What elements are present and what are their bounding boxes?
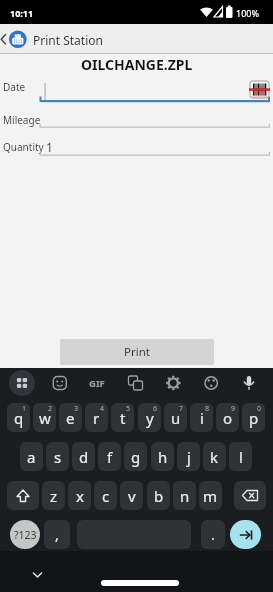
button[interactable]: b	[147, 481, 170, 510]
button[interactable]: n	[173, 481, 196, 510]
button[interactable]: o	[216, 403, 239, 432]
button[interactable]	[198, 370, 224, 396]
button[interactable]: m	[199, 481, 222, 510]
button[interactable]: Print Station	[0, 24, 273, 54]
staticText: j	[187, 447, 191, 467]
button[interactable]	[123, 370, 149, 396]
staticText: u	[171, 408, 181, 428]
staticText: y	[146, 408, 154, 428]
button[interactable]: c	[94, 481, 117, 510]
staticText: s	[54, 447, 62, 467]
button[interactable]: d	[72, 442, 95, 471]
staticText: 100%	[236, 7, 259, 19]
staticText: 7	[179, 404, 184, 414]
staticText: l	[239, 447, 243, 467]
button[interactable]: ,	[44, 520, 70, 549]
staticText: p	[249, 408, 259, 428]
staticText: a	[27, 447, 36, 467]
staticText: 6	[153, 404, 158, 414]
staticText: 3	[74, 404, 79, 414]
staticText: z	[50, 486, 58, 506]
staticText: ?123	[14, 528, 37, 542]
button[interactable]: p	[242, 403, 265, 432]
staticText: x	[76, 486, 84, 506]
button[interactable]: r	[85, 403, 108, 432]
staticText: r	[93, 408, 100, 428]
button[interactable]: .	[201, 520, 225, 549]
button[interactable]: a	[20, 442, 43, 471]
staticText: e	[66, 408, 75, 428]
staticText: n	[180, 486, 190, 506]
staticText: Date	[3, 80, 26, 94]
staticText: 8	[205, 404, 210, 414]
staticText: 10:11	[10, 7, 34, 19]
button[interactable]: g	[124, 442, 147, 471]
staticText: q	[14, 408, 24, 428]
button[interactable]	[85, 370, 111, 396]
staticText: Print	[124, 344, 150, 360]
staticText: 1	[46, 139, 53, 155]
staticText: w	[39, 408, 51, 428]
button[interactable]: q	[7, 403, 30, 432]
staticText: k	[210, 447, 219, 467]
staticText: 9	[231, 404, 236, 414]
button[interactable]: z	[42, 481, 65, 510]
button[interactable]: t	[111, 403, 134, 432]
button[interactable]: w	[33, 403, 56, 432]
button[interactable]	[101, 580, 179, 586]
button[interactable]	[236, 370, 262, 396]
button[interactable]: i	[190, 403, 213, 432]
button[interactable]: s	[46, 442, 69, 471]
staticText: d	[79, 447, 89, 467]
button[interactable]	[9, 370, 35, 396]
staticText: 0	[257, 404, 262, 414]
staticText: f	[107, 447, 113, 467]
staticText: m	[203, 486, 218, 506]
button[interactable]	[160, 370, 186, 396]
button[interactable]	[47, 370, 73, 396]
staticText: ,	[55, 525, 59, 544]
staticText: b	[154, 486, 164, 506]
staticText: c	[102, 486, 110, 506]
button[interactable]	[7, 481, 39, 510]
button[interactable]: e	[59, 403, 82, 432]
staticText: Print Station	[33, 32, 103, 48]
staticText: t	[120, 408, 126, 428]
button[interactable]: h	[151, 442, 174, 471]
staticText: i	[200, 408, 204, 428]
button[interactable]: l	[229, 442, 252, 471]
button[interactable]: v	[120, 481, 143, 510]
staticText: Mileage	[3, 113, 41, 127]
staticText: 1	[22, 404, 27, 414]
button[interactable]: u	[164, 403, 187, 432]
button[interactable]: j	[177, 442, 200, 471]
staticText: .	[211, 525, 215, 544]
staticText: 2	[48, 404, 53, 414]
button[interactable]: Print	[60, 339, 214, 365]
staticText: h	[158, 447, 168, 467]
button[interactable]	[250, 81, 269, 98]
staticText: o	[223, 408, 233, 428]
staticText: g	[131, 447, 141, 467]
staticText: 5	[126, 404, 131, 414]
staticText: OILCHANGE.ZPL	[81, 55, 193, 74]
button[interactable]: f	[98, 442, 121, 471]
button[interactable]: k	[203, 442, 226, 471]
button[interactable]	[234, 481, 266, 510]
staticText: GIF	[89, 377, 105, 390]
staticText: v	[128, 486, 136, 506]
button[interactable]: y	[138, 403, 161, 432]
button[interactable]: x	[68, 481, 91, 510]
button[interactable]	[230, 520, 261, 549]
staticText: Quantity	[3, 140, 44, 154]
staticText: 4	[100, 404, 105, 414]
button[interactable]: ?123	[10, 520, 40, 549]
